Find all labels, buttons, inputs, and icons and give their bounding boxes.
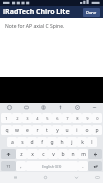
button[interactable]: k [77, 137, 87, 147]
button[interactable]: t [42, 125, 52, 135]
button[interactable]: . [78, 161, 88, 171]
button[interactable]: x [27, 149, 38, 159]
button[interactable]: ?1 [1, 161, 16, 171]
button[interactable]: 4 [32, 113, 42, 123]
button[interactable]: 2 [12, 113, 22, 123]
button[interactable]: z [16, 149, 27, 159]
button[interactable]: Done [83, 8, 100, 17]
button[interactable]: e [22, 125, 32, 135]
staticText: , [20, 163, 22, 170]
button[interactable]: y [52, 125, 62, 135]
staticText: k [81, 139, 84, 146]
staticText: 4 [36, 116, 39, 121]
button[interactable]: b [58, 149, 68, 159]
staticText: n [71, 151, 75, 158]
button[interactable]: v [48, 149, 58, 159]
staticText: . [82, 163, 84, 170]
staticText: 3 [26, 116, 29, 121]
staticText: u [65, 127, 69, 134]
staticText: Done [86, 10, 97, 15]
staticText: ?1 [6, 164, 11, 169]
staticText: i [76, 127, 78, 134]
staticText: o [85, 127, 89, 134]
button[interactable]: Voice input [52, 103, 69, 112]
staticText: 9 [86, 116, 89, 121]
button[interactable]: d [27, 137, 37, 147]
button[interactable]: Settings [69, 103, 86, 112]
staticText: 6 [56, 116, 59, 121]
button[interactable]: g [47, 137, 57, 147]
staticText: 8 [76, 116, 79, 121]
staticText: j [71, 139, 73, 146]
staticText: iRadTech Chiro Lite [3, 7, 70, 17]
button[interactable]: 9 [82, 113, 92, 123]
button[interactable]: h [57, 137, 67, 147]
button[interactable]: m [78, 149, 88, 159]
staticText: 7 [66, 116, 69, 121]
staticText: x [31, 151, 34, 158]
button[interactable]: GIF [18, 103, 35, 112]
button[interactable]: u [62, 125, 72, 135]
staticText: h [60, 139, 64, 146]
button[interactable]: 7 [62, 113, 72, 123]
button[interactable]: Clipboard [35, 103, 52, 112]
button[interactable]: 8 [72, 113, 82, 123]
button[interactable]: Recent apps [0, 172, 30, 183]
button[interactable]: f [37, 137, 47, 147]
staticText: d [30, 139, 34, 146]
staticText: 5 [46, 116, 49, 121]
button[interactable]: Back [61, 172, 92, 183]
button[interactable]: p [92, 125, 102, 135]
button[interactable]: , [16, 161, 26, 171]
staticText: 0 [96, 116, 99, 121]
button[interactable]: c [38, 149, 48, 159]
staticText: s [21, 139, 24, 146]
staticText: 1 [5, 116, 8, 121]
staticText: g [50, 139, 54, 146]
button[interactable]: n [68, 149, 78, 159]
button[interactable]: s [17, 137, 27, 147]
button[interactable]: 0 [92, 113, 102, 123]
button[interactable]: 6 [52, 113, 62, 123]
button[interactable]: r [32, 125, 42, 135]
button[interactable]: English (US) [26, 161, 78, 171]
staticText: f [41, 139, 43, 146]
staticText: q [5, 127, 9, 134]
staticText: r [36, 127, 39, 134]
button[interactable]: o [82, 125, 92, 135]
staticText: c [42, 151, 45, 158]
staticText: v [52, 151, 55, 158]
button[interactable]: 5 [42, 113, 52, 123]
button[interactable]: l [87, 137, 97, 147]
staticText: Note for AP axial C Spine. [5, 23, 65, 30]
staticText: p [95, 127, 99, 134]
staticText: l [91, 139, 93, 146]
staticText: e [26, 127, 29, 134]
staticText: 2 [16, 116, 19, 121]
staticText: w [15, 127, 19, 134]
button[interactable]: i [72, 125, 82, 135]
staticText: z [20, 151, 23, 158]
staticText: a [11, 139, 14, 146]
button[interactable]: w [12, 125, 22, 135]
staticText: t [46, 127, 48, 134]
button[interactable]: 1 [1, 113, 12, 123]
staticText: y [56, 127, 59, 134]
button[interactable]: Emoji [0, 103, 18, 112]
button[interactable]: Home [30, 172, 61, 183]
staticText: b [61, 151, 65, 158]
button[interactable]: Backspace [88, 149, 102, 159]
button[interactable]: a [7, 137, 17, 147]
button[interactable]: Enter [88, 161, 102, 171]
staticText: m [81, 151, 86, 158]
button[interactable]: q [1, 125, 12, 135]
button[interactable]: Shift [1, 149, 16, 159]
button[interactable]: More options [86, 103, 103, 112]
button[interactable]: 3 [22, 113, 32, 123]
button[interactable]: Hide keyboard [92, 172, 103, 183]
staticText: English (US) [42, 164, 62, 169]
button[interactable]: j [67, 137, 77, 147]
